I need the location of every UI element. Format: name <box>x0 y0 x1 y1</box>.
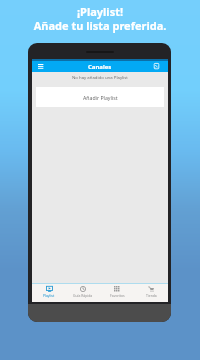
button[interactable]: Añadir Playlist <box>36 87 164 107</box>
button[interactable]: Cast <box>154 63 161 70</box>
button[interactable]: Tienda <box>134 284 168 302</box>
staticText: Playlist <box>43 293 55 298</box>
button[interactable]: Menu <box>38 63 45 70</box>
button[interactable]: Favoritos <box>100 284 134 302</box>
staticText: No hay añadido una Playlist <box>72 74 128 80</box>
staticText: Añadir Playlist <box>83 94 118 101</box>
button[interactable]: Guía Rápida <box>66 284 100 302</box>
staticText: Tienda <box>146 293 157 298</box>
staticText: Añade tu lista preferida. <box>0 18 200 33</box>
staticText: Canales <box>88 63 112 71</box>
staticText: Favoritos <box>110 293 125 298</box>
staticText: Guía Rápida <box>73 293 93 298</box>
staticText: ¡Playlist! <box>0 4 200 19</box>
button[interactable]: Playlist <box>32 284 66 302</box>
